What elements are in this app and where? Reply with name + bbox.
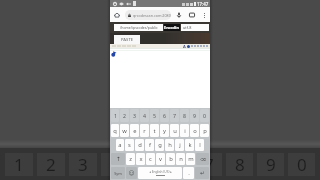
button[interactable]: j xyxy=(175,139,184,151)
button[interactable]: a xyxy=(116,139,124,151)
staticText: PASTE xyxy=(121,37,134,43)
button[interactable]: . xyxy=(183,167,194,179)
button[interactable]: ◂ English (US) ▸ xyxy=(138,167,182,179)
button[interactable]: q xyxy=(111,124,119,137)
button[interactable]: w xyxy=(120,124,129,137)
staticText: r xyxy=(143,127,146,135)
staticText: 2 xyxy=(123,112,126,119)
button[interactable]: e xyxy=(130,124,139,137)
button[interactable]: Sym xyxy=(111,167,125,179)
staticText: t xyxy=(153,127,156,135)
staticText: 4 xyxy=(143,112,146,119)
button[interactable]: z xyxy=(126,153,135,165)
button[interactable]: i xyxy=(180,124,189,137)
staticText: k xyxy=(188,141,192,149)
button[interactable]: y xyxy=(160,124,169,137)
button[interactable]: s xyxy=(125,139,134,151)
staticText: o xyxy=(193,127,197,135)
staticText: ☺ xyxy=(128,170,135,177)
staticText: i xyxy=(184,127,186,135)
staticText: 7 xyxy=(173,112,176,119)
staticText: 9 xyxy=(266,153,276,176)
button[interactable]: 0 xyxy=(200,109,209,122)
button[interactable]: d xyxy=(135,139,144,151)
staticText: ↵ xyxy=(200,170,205,177)
button[interactable]: More options xyxy=(201,12,207,18)
button[interactable]: 3 xyxy=(130,109,139,122)
staticText: utf-8 xyxy=(183,25,192,30)
staticText: Sym xyxy=(114,171,122,176)
button[interactable]: PASTE xyxy=(114,35,140,44)
button[interactable]: o xyxy=(190,124,199,137)
staticText: j xyxy=(179,141,181,149)
staticText: w xyxy=(122,127,127,135)
staticText: e xyxy=(133,127,137,135)
staticText: /home/ipscodes/public xyxy=(120,25,158,30)
button[interactable]: k xyxy=(185,139,194,151)
staticText: 3 xyxy=(78,153,88,176)
button[interactable]: utf-8 xyxy=(181,24,209,31)
staticText: ◂ English (US) ▸ xyxy=(149,170,172,174)
button[interactable]: ↑ xyxy=(111,153,125,165)
staticText: a xyxy=(118,141,122,149)
button[interactable]: Home xyxy=(113,11,121,19)
staticText: 3 xyxy=(133,112,136,119)
staticText: s xyxy=(128,141,131,149)
staticText: p xyxy=(203,127,207,135)
button[interactable]: v xyxy=(156,153,165,165)
button[interactable]: ☺ xyxy=(126,167,137,179)
staticText: y xyxy=(163,127,166,135)
staticText: 5 xyxy=(142,153,152,176)
staticText: 0 xyxy=(297,153,307,176)
button[interactable]: c xyxy=(146,153,155,165)
button[interactable]: 1 xyxy=(111,109,119,122)
staticText: 1 xyxy=(14,153,24,176)
staticText: qrcodescan.com:2080 xyxy=(133,13,171,18)
button[interactable]: r xyxy=(140,124,149,137)
staticText: g xyxy=(158,141,162,149)
button[interactable]: 2 xyxy=(120,109,129,122)
button[interactable]: t xyxy=(150,124,159,137)
staticText: 4 xyxy=(110,153,120,176)
button[interactable]: ↵ xyxy=(195,167,209,179)
button[interactable]: Switch tabs xyxy=(188,11,196,19)
button[interactable]: p xyxy=(200,124,209,137)
staticText: 17:47 xyxy=(197,1,209,7)
button[interactable]: Voice search xyxy=(175,11,183,19)
staticText: ⌫ xyxy=(200,157,206,162)
staticText: h xyxy=(168,141,172,149)
button[interactable]: 6 xyxy=(160,109,169,122)
staticText: . xyxy=(188,169,190,177)
button[interactable]: x xyxy=(136,153,145,165)
staticText: 5 xyxy=(153,112,156,119)
staticText: n xyxy=(179,155,183,163)
staticText: f xyxy=(149,141,151,149)
button[interactable]: g xyxy=(155,139,164,151)
staticText: x xyxy=(139,155,143,163)
button[interactable]: f xyxy=(145,139,154,151)
button[interactable]: 7 xyxy=(170,109,179,122)
staticText: v xyxy=(159,155,162,163)
staticText: b xyxy=(169,155,173,163)
button[interactable]: qrcodescan.com:2080 xyxy=(125,10,171,20)
staticText: 6 xyxy=(163,112,166,119)
button[interactable]: 4 xyxy=(140,109,149,122)
button[interactable]: 5 xyxy=(150,109,159,122)
staticText: 9 xyxy=(193,112,196,119)
button[interactable]: h xyxy=(165,139,174,151)
staticText: l xyxy=(199,141,201,149)
button[interactable]: ⌫ xyxy=(196,153,209,165)
button[interactable]: b xyxy=(166,153,175,165)
button[interactable]: /home/ipscodes/public xyxy=(114,24,163,31)
button[interactable]: 8 xyxy=(180,109,189,122)
staticText: ↑ xyxy=(116,156,121,163)
button[interactable]: n xyxy=(176,153,185,165)
staticText: 8 xyxy=(183,112,186,119)
button[interactable]: m xyxy=(186,153,195,165)
button[interactable]: l xyxy=(195,139,204,151)
button[interactable]: u xyxy=(170,124,179,137)
staticText: d xyxy=(138,141,142,149)
staticText: m xyxy=(188,155,194,163)
staticText: 1 xyxy=(114,112,117,119)
button[interactable]: 9 xyxy=(190,109,199,122)
